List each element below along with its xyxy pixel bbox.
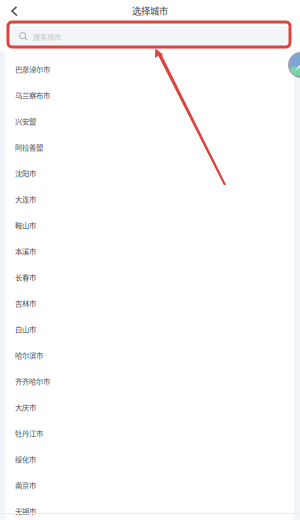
button[interactable]: 白山市 bbox=[0, 316, 300, 342]
button[interactable]: 乌兰察布市 bbox=[0, 82, 300, 108]
staticText: 搜索城市 bbox=[33, 31, 61, 42]
staticText: 齐齐哈尔市 bbox=[15, 376, 50, 386]
staticText: 吉林市 bbox=[15, 298, 36, 308]
staticText: 牡丹江市 bbox=[15, 428, 43, 438]
button[interactable]: 鞍山市 bbox=[0, 212, 300, 238]
button[interactable]: 绥化市 bbox=[0, 446, 300, 472]
staticText: 鞍山市 bbox=[15, 220, 36, 230]
staticText: 大连市 bbox=[15, 194, 36, 204]
staticText: 白山市 bbox=[15, 324, 36, 334]
staticText: 本溪市 bbox=[15, 246, 36, 256]
button[interactable]: 本溪市 bbox=[0, 238, 300, 264]
staticText: 大庆市 bbox=[15, 402, 36, 412]
button[interactable]: 大连市 bbox=[0, 186, 300, 212]
staticText: 沈阳市 bbox=[15, 168, 36, 178]
staticText: 无锡市 bbox=[15, 506, 36, 516]
staticText: 阿拉善盟 bbox=[15, 142, 43, 152]
staticText: 绥化市 bbox=[15, 454, 36, 464]
button[interactable]: 牡丹江市 bbox=[0, 420, 300, 446]
button[interactable]: 哈尔滨市 bbox=[0, 342, 300, 368]
button[interactable]: 长春市 bbox=[0, 264, 300, 290]
staticText: 南京市 bbox=[15, 480, 36, 490]
staticText: 巴彦淖尔市 bbox=[15, 64, 50, 74]
button[interactable]: 兴安盟 bbox=[0, 108, 300, 134]
staticText: 长春市 bbox=[15, 272, 36, 282]
button[interactable]: 吉林市 bbox=[0, 290, 300, 316]
button[interactable]: 齐齐哈尔市 bbox=[0, 368, 300, 394]
button[interactable]: 沈阳市 bbox=[0, 160, 300, 186]
button[interactable]: 南京市 bbox=[0, 472, 300, 498]
staticText: 选择城市 bbox=[132, 4, 168, 17]
button[interactable]: 搜索城市 bbox=[11, 26, 288, 47]
staticText: 乌兰察布市 bbox=[15, 90, 50, 100]
staticText: 哈尔滨市 bbox=[15, 350, 43, 360]
staticText: 兴安盟 bbox=[15, 116, 36, 126]
button[interactable]: 巴彦淖尔市 bbox=[0, 56, 300, 82]
button[interactable]: 无锡市 bbox=[0, 498, 300, 520]
button[interactable]: Back bbox=[0, 0, 30, 21]
button[interactable]: 阿拉善盟 bbox=[0, 134, 300, 160]
button[interactable]: 大庆市 bbox=[0, 394, 300, 420]
